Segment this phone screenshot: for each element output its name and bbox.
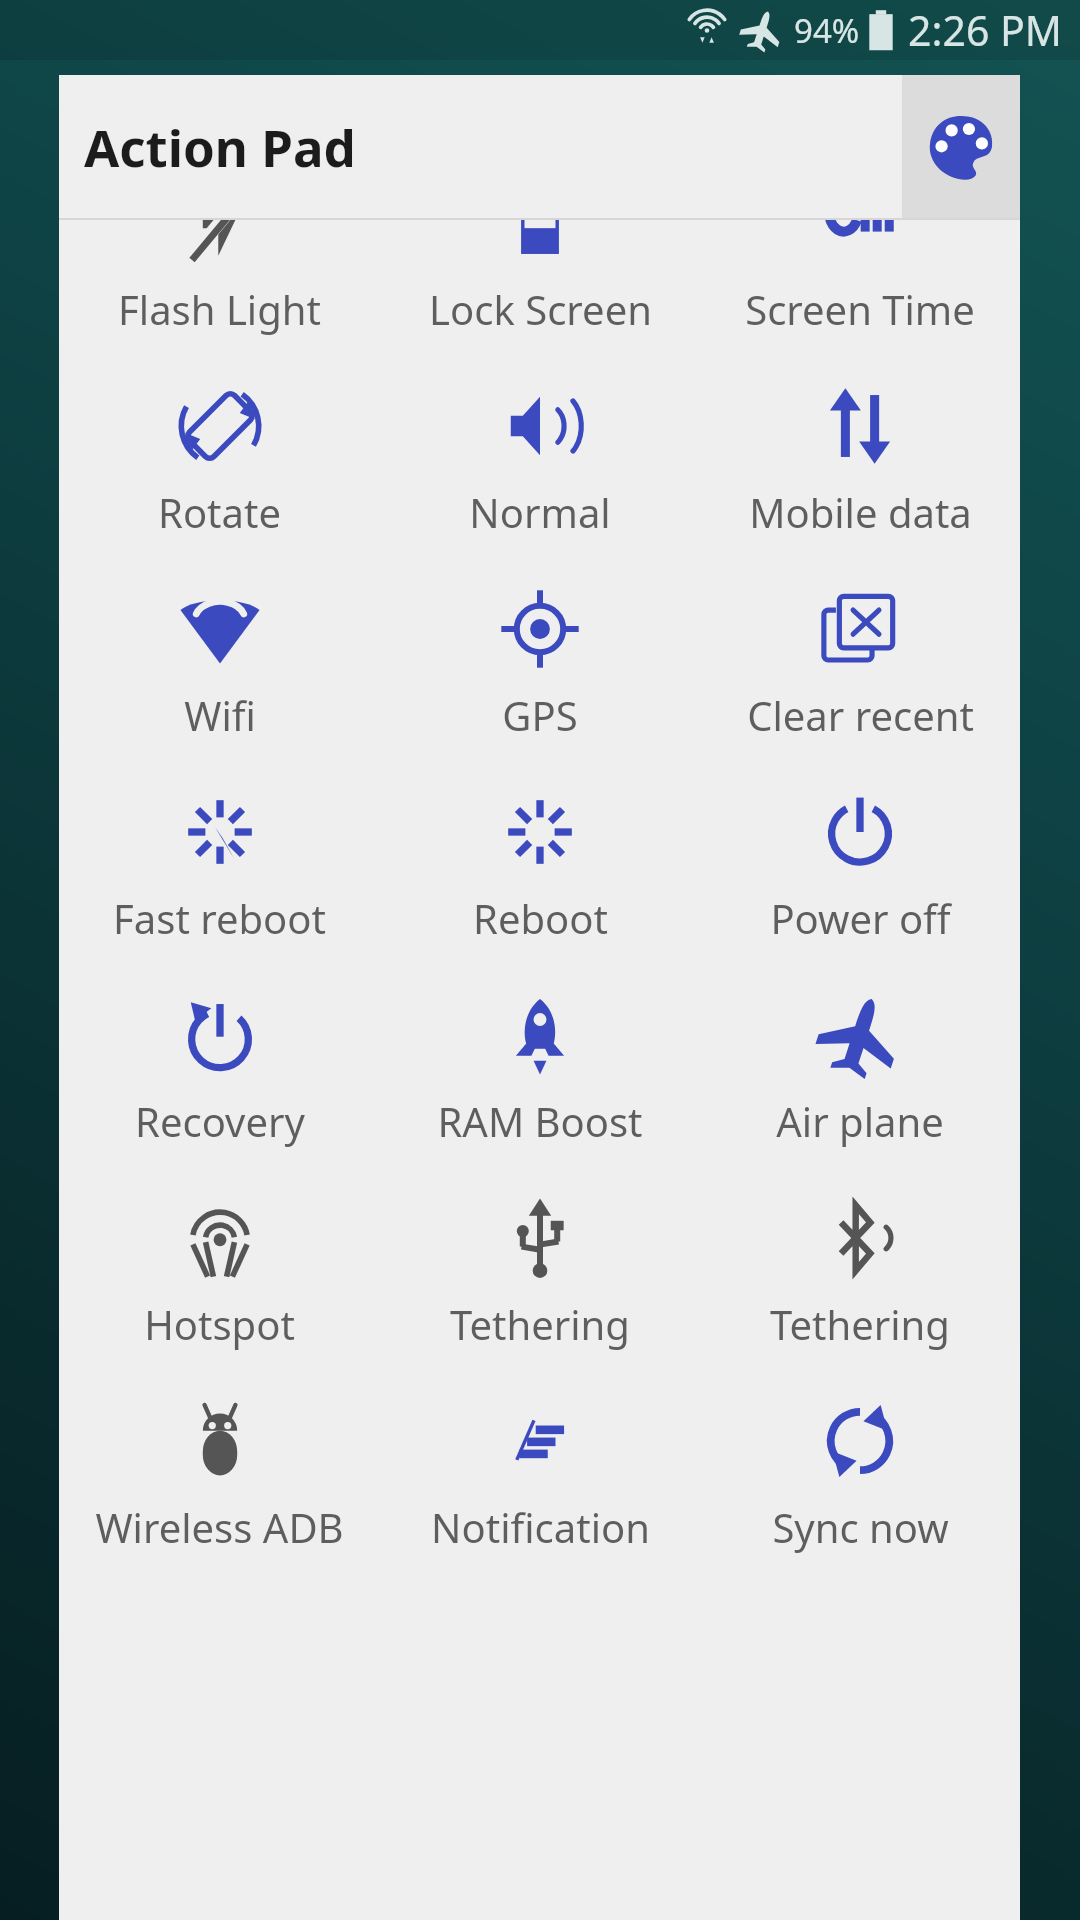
staticText: Tethering (450, 1297, 630, 1351)
staticText: Sync now (772, 1500, 949, 1554)
staticText: Normal (469, 485, 611, 539)
button[interactable]: Flash Light (59, 220, 380, 361)
button[interactable]: Lock Screen (380, 220, 700, 361)
button[interactable]: Fast reboot (59, 767, 380, 970)
staticText: Notification (431, 1500, 650, 1554)
button[interactable]: Tethering (700, 1173, 1020, 1376)
staticText: GPS (502, 688, 578, 742)
button[interactable]: Reboot (380, 767, 700, 970)
button[interactable]: Recovery (59, 970, 380, 1173)
button[interactable]: Tethering (380, 1173, 700, 1376)
staticText: 94% (794, 8, 860, 53)
staticText: Action Pad (84, 112, 356, 181)
button[interactable]: Wifi (59, 564, 380, 767)
button[interactable]: RAM Boost (380, 970, 700, 1173)
staticText: RAM Boost (437, 1094, 643, 1148)
staticText: Wifi (184, 688, 256, 742)
staticText: Reboot (473, 891, 608, 945)
staticText: Screen Time (745, 282, 975, 336)
button[interactable]: Normal (380, 361, 700, 564)
button[interactable]: GPS (380, 564, 700, 767)
button[interactable]: Clear recent (700, 564, 1020, 767)
staticText: Clear recent (747, 688, 974, 742)
staticText: Rotate (158, 485, 281, 539)
staticText: Mobile data (749, 485, 972, 539)
button[interactable]: Air plane (700, 970, 1020, 1173)
button[interactable]: Power off (700, 767, 1020, 970)
staticText: Recovery (135, 1094, 305, 1148)
staticText: Hotspot (144, 1297, 295, 1351)
staticText: Lock Screen (429, 282, 652, 336)
button[interactable]: Notification (380, 1376, 700, 1579)
staticText: Air plane (776, 1094, 944, 1148)
staticText: 2:26 PM (908, 2, 1062, 58)
staticText: Flash Light (118, 282, 321, 336)
staticText: Fast reboot (113, 891, 326, 945)
staticText: Tethering (770, 1297, 950, 1351)
button[interactable]: Wireless ADB (59, 1376, 380, 1579)
button[interactable]: Action Pad (59, 75, 902, 218)
staticText: Wireless ADB (95, 1500, 344, 1554)
button[interactable]: Sync now (700, 1376, 1020, 1579)
button[interactable]: Hotspot (59, 1173, 380, 1376)
staticText: Power off (770, 891, 951, 945)
button[interactable]: Mobile data (700, 361, 1020, 564)
button[interactable]: Change theme colour (902, 75, 1020, 218)
button[interactable]: Rotate (59, 361, 380, 564)
button[interactable]: Screen Time (700, 220, 1020, 361)
